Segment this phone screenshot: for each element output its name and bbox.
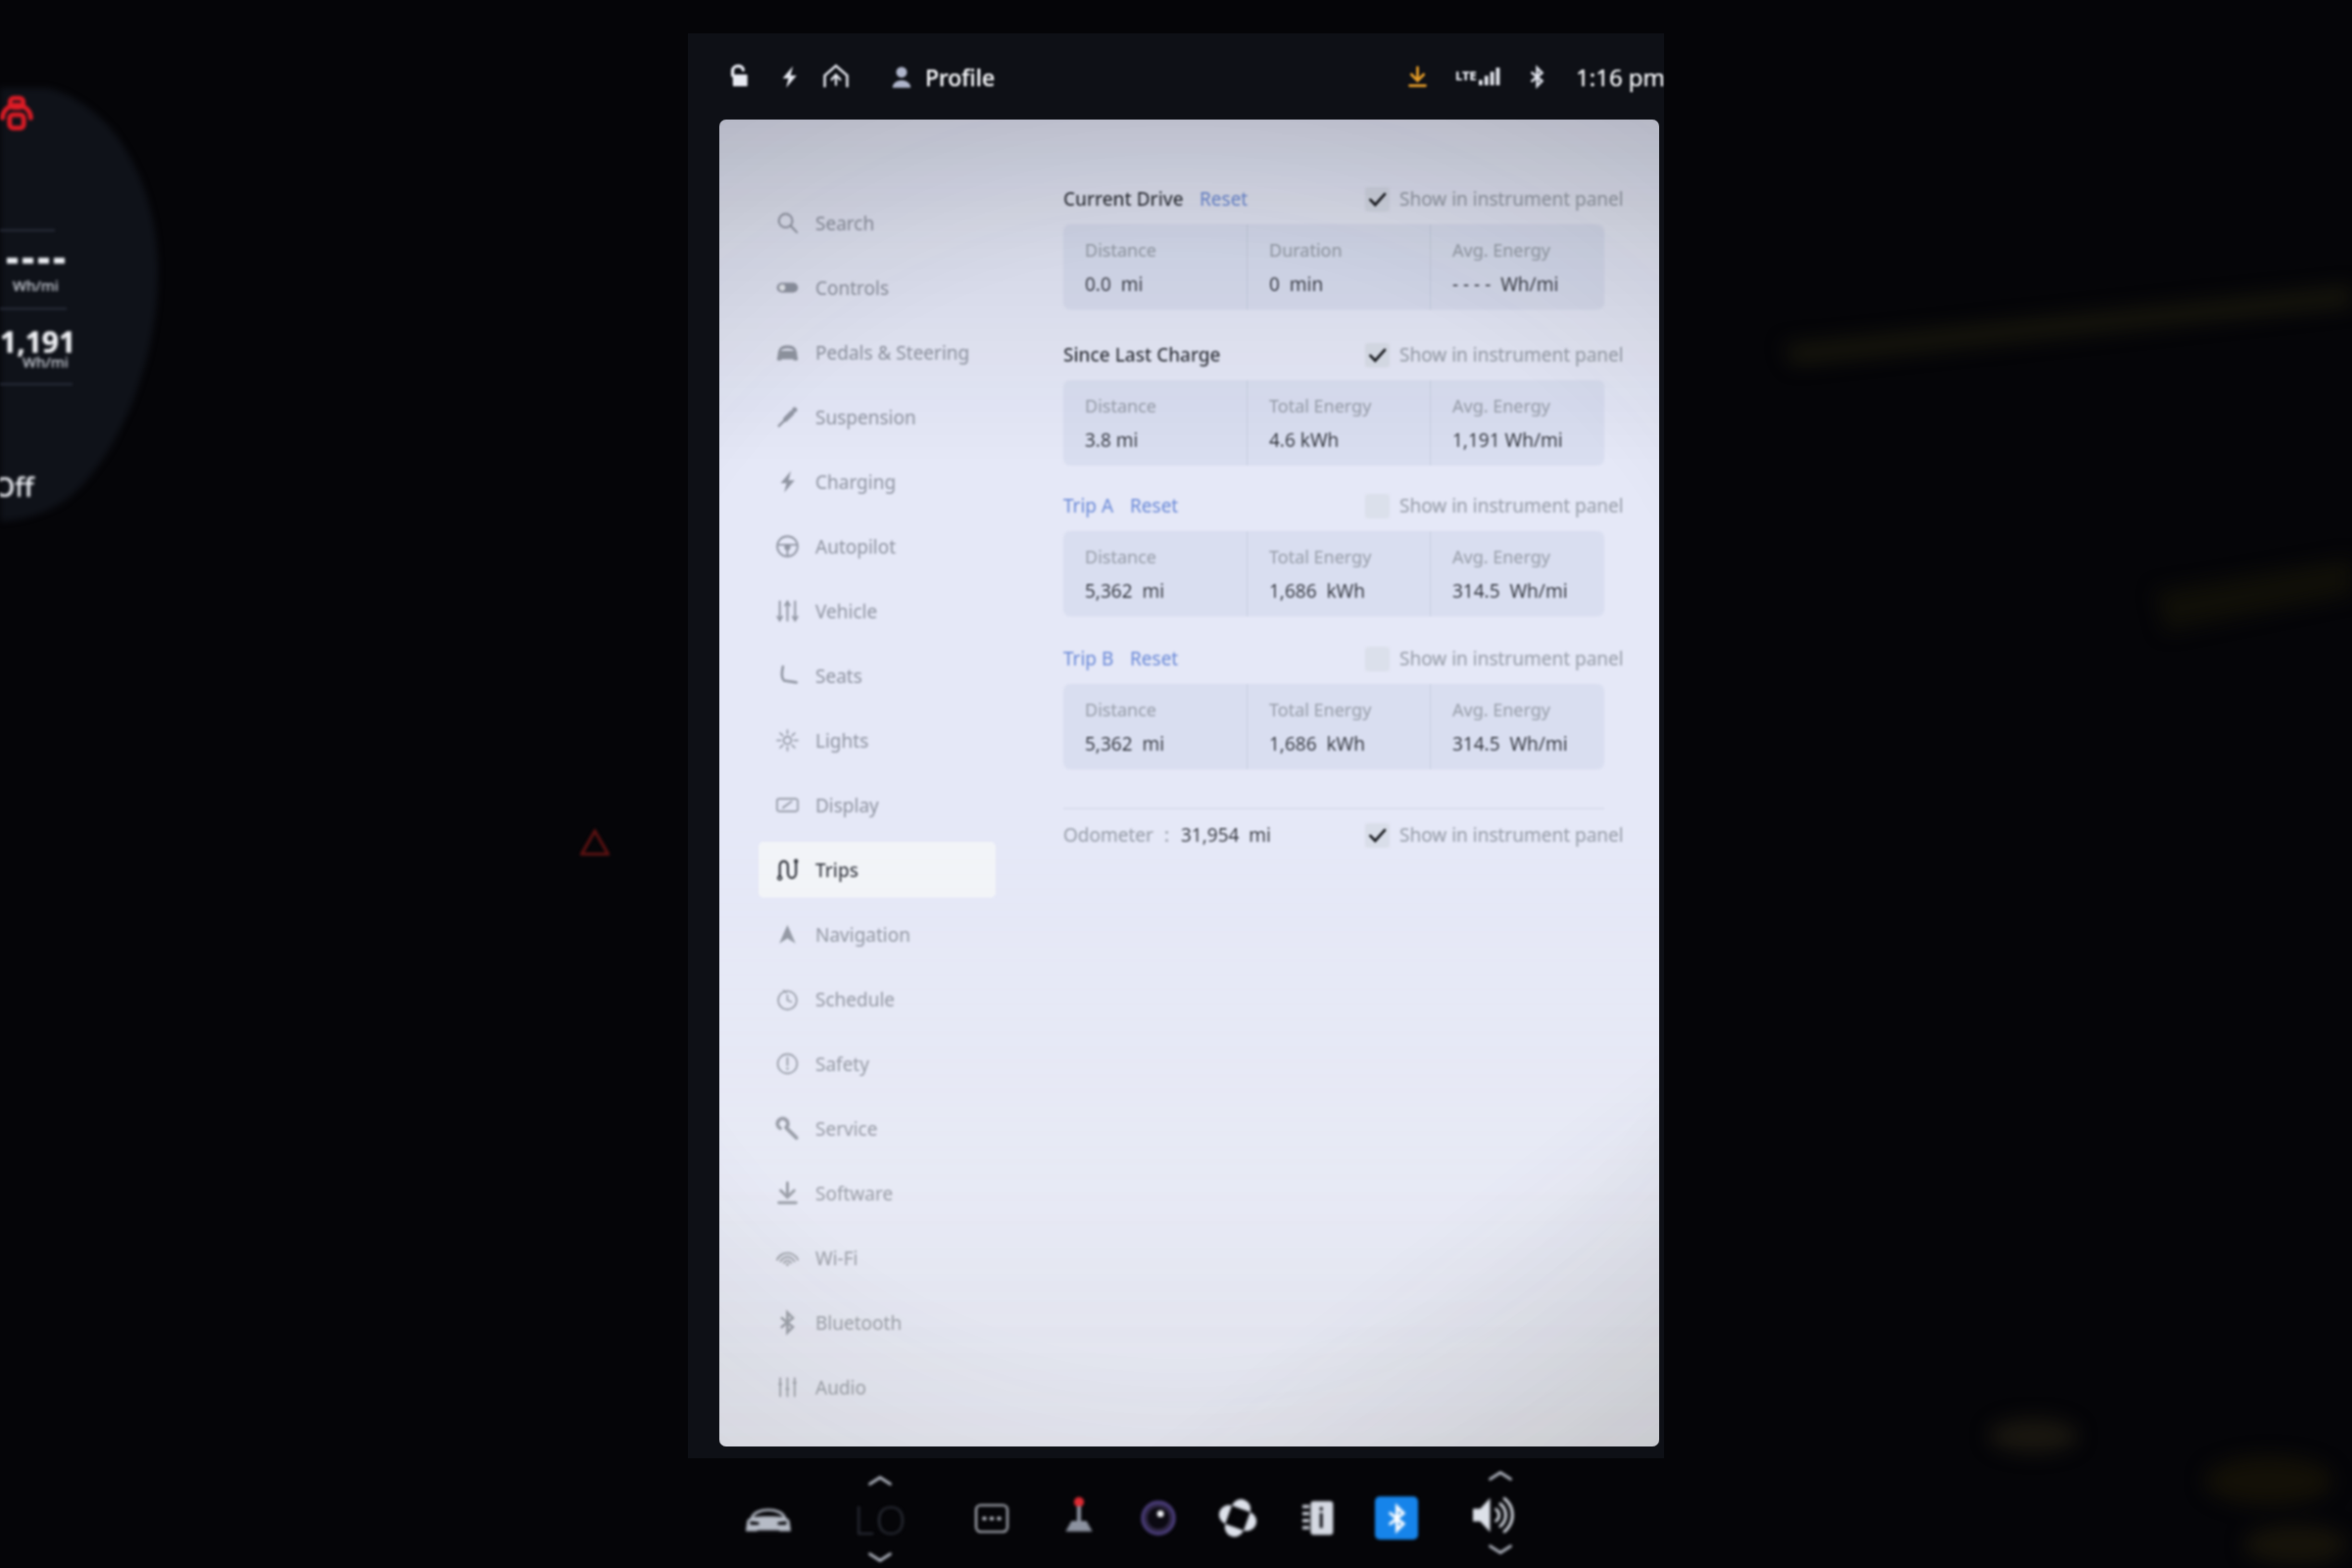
button[interactable]: Trip A <box>1063 493 1114 518</box>
staticText: Service <box>815 1116 878 1142</box>
staticText: Odometer <box>1063 822 1153 848</box>
staticText: Controls <box>815 275 890 301</box>
staticText: Trip B <box>1063 646 1114 671</box>
button[interactable]: Lights <box>759 712 996 768</box>
staticText: Pedals & Steering <box>815 340 970 366</box>
button[interactable]: Show in instrument panel <box>1365 491 1624 520</box>
button[interactable]: Autopilot <box>759 518 996 574</box>
staticText: Schedule <box>815 987 896 1012</box>
button[interactable]: Search <box>759 195 996 251</box>
staticText: 314.5 Wh/mi <box>1452 731 1568 757</box>
button[interactable]: Decrease <box>1479 1534 1522 1565</box>
staticText: Avg. Energy <box>1452 545 1551 569</box>
button[interactable]: Decrease <box>858 1542 902 1568</box>
button[interactable]: Increase <box>858 1465 902 1496</box>
button[interactable]: Current Drive <box>1063 186 1184 212</box>
staticText: Avg. Energy <box>1452 394 1551 418</box>
staticText: Wh/mi <box>13 275 59 295</box>
staticText: Reset <box>1130 646 1179 671</box>
staticText: Show in instrument panel <box>1399 822 1624 848</box>
button[interactable]: Vehicle <box>735 1485 802 1551</box>
staticText: 31,954 mi <box>1181 822 1271 848</box>
button[interactable]: Pedals & Steering <box>759 324 996 380</box>
button[interactable]: Volume <box>1463 1482 1530 1548</box>
staticText: LTE <box>1455 67 1477 84</box>
button[interactable]: Wi-Fi <box>759 1230 996 1286</box>
staticText: 314.5 Wh/mi <box>1452 578 1568 604</box>
staticText: Avg. Energy <box>1452 238 1551 263</box>
staticText: Search <box>815 211 875 236</box>
staticText: Show in instrument panel <box>1399 493 1624 518</box>
button[interactable]: Home <box>814 55 857 98</box>
staticText: 3.8 mi <box>1085 427 1139 453</box>
button[interactable]: Lock vehicle <box>718 55 761 98</box>
staticText: Navigation <box>815 922 910 948</box>
button[interactable]: Since Last Charge <box>1063 342 1221 367</box>
staticText: Software <box>815 1181 894 1206</box>
button[interactable]: Increase <box>1479 1460 1522 1492</box>
button[interactable]: Audio <box>759 1359 996 1415</box>
staticText: Current Drive <box>1063 186 1184 212</box>
button[interactable]: Owner's manual <box>1285 1485 1351 1551</box>
button[interactable]: Software <box>759 1165 996 1221</box>
staticText: : <box>1164 822 1170 848</box>
button[interactable]: Bluetooth <box>1520 60 1553 93</box>
staticText: Safety <box>815 1052 869 1077</box>
staticText: Suspension <box>815 405 916 430</box>
staticText: 5,362 mi <box>1085 731 1165 757</box>
staticText: Show in instrument panel <box>1399 646 1624 671</box>
button[interactable]: Bluetooth <box>1375 1496 1418 1540</box>
button[interactable]: Camera <box>1125 1485 1192 1551</box>
button[interactable]: Show in instrument panel <box>1365 644 1624 673</box>
staticText: Trip A <box>1063 493 1114 518</box>
button[interactable]: Reset <box>1130 493 1179 518</box>
button[interactable]: Service <box>759 1101 996 1156</box>
button[interactable]: Vehicle <box>759 583 996 639</box>
button[interactable]: Profile <box>887 52 1000 102</box>
button[interactable]: Show in instrument panel <box>1365 184 1624 214</box>
button[interactable]: Bluetooth <box>759 1295 996 1350</box>
staticText: Seats <box>815 663 862 689</box>
button[interactable]: Suspension <box>759 389 996 445</box>
button[interactable]: Gear selector <box>1046 1483 1112 1549</box>
staticText: Avg. Energy <box>1452 698 1551 722</box>
staticText: Distance <box>1085 394 1156 418</box>
button[interactable]: Show in instrument panel <box>1365 340 1624 369</box>
staticText: Charging <box>815 469 897 495</box>
button[interactable]: LO <box>845 1492 917 1543</box>
staticText: 0.0 mi <box>1085 271 1144 297</box>
staticText: 1,191 Wh/mi <box>1452 427 1563 453</box>
button[interactable]: Reset <box>1130 646 1179 671</box>
staticText: Distance <box>1085 545 1156 569</box>
button[interactable]: Navigation <box>759 906 996 962</box>
staticText: Total Energy <box>1269 394 1372 418</box>
staticText: Profile <box>925 62 996 92</box>
button[interactable]: Charging <box>767 55 810 98</box>
staticText: Total Energy <box>1269 698 1372 722</box>
staticText: Trips <box>815 857 858 883</box>
button[interactable]: Trip B <box>1063 646 1114 671</box>
button[interactable]: Seats <box>759 648 996 704</box>
button[interactable]: Charging <box>759 454 996 510</box>
button[interactable]: Schedule <box>759 971 996 1027</box>
button[interactable]: Safety <box>759 1036 996 1092</box>
button[interactable]: Show in instrument panel <box>1365 820 1624 850</box>
staticText: 0 min <box>1269 271 1324 297</box>
staticText: 1,686 kWh <box>1269 578 1366 604</box>
button[interactable]: Software update <box>1398 58 1436 95</box>
button[interactable]: More options <box>958 1485 1025 1551</box>
staticText: Display <box>815 793 879 818</box>
staticText: Distance <box>1085 238 1156 263</box>
staticText: Lights <box>815 728 869 754</box>
staticText: Duration <box>1269 238 1343 263</box>
button[interactable]: Display <box>759 777 996 833</box>
button[interactable]: Reset <box>1200 186 1249 212</box>
staticText: Since Last Charge <box>1063 342 1221 367</box>
button[interactable]: Controls <box>759 260 996 316</box>
staticText: Audio <box>815 1375 866 1400</box>
staticText: Wi-Fi <box>815 1246 858 1271</box>
button[interactable]: Climate fan <box>1204 1485 1271 1551</box>
staticText: Distance <box>1085 698 1156 722</box>
button[interactable]: Trips <box>759 842 996 898</box>
staticText: Bluetooth <box>815 1310 903 1336</box>
